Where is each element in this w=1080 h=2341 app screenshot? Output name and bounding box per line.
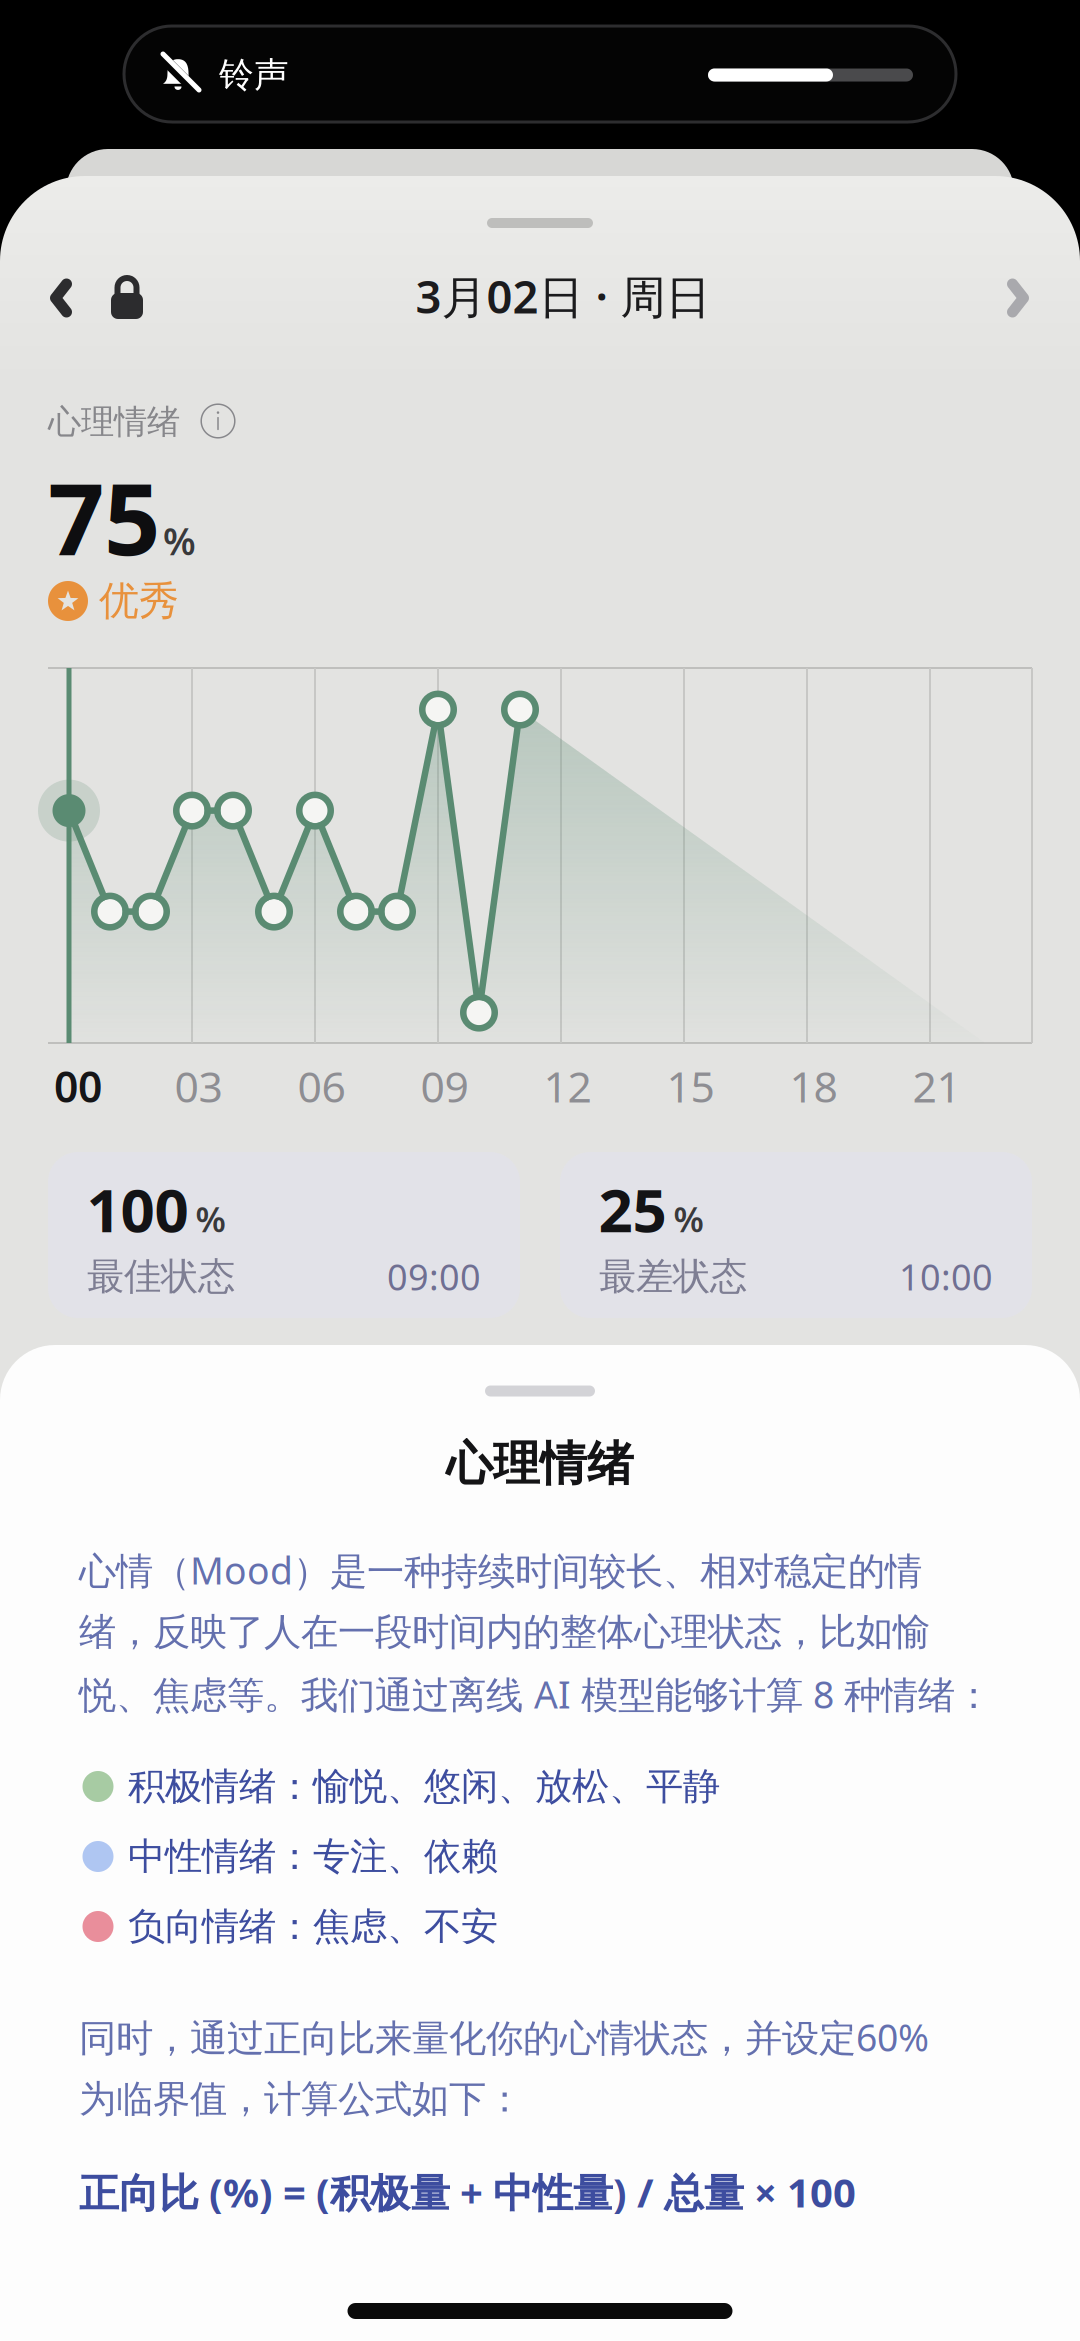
button[interactable]: 关于心理情绪 <box>197 400 239 442</box>
staticText: 最差状态 <box>599 1254 747 1299</box>
button[interactable]: 下一天 <box>995 264 1041 331</box>
staticText: 同时，通过正向比来量化你的心情状态，并设定60% <box>79 2012 929 2062</box>
staticText: 心理情绪 <box>48 401 180 442</box>
staticText: 绪，反映了人在一段时间内的整体心理状态，比如愉 <box>79 1609 930 1655</box>
staticText: 积极情绪：愉悦、悠闲、放松、平静 <box>128 1764 720 1809</box>
staticText: 心理情绪 <box>446 1435 634 1493</box>
staticText: 25 <box>598 1169 666 1249</box>
staticText: 12 <box>543 1058 591 1114</box>
staticText: 铃声 <box>219 54 289 96</box>
staticText: 心情（Mood）是一种持续时间较长、相对稳定的情 <box>79 1545 922 1595</box>
staticText: 优秀 <box>99 576 179 625</box>
staticText: 06 <box>297 1058 345 1114</box>
button[interactable]: 返回 <box>38 264 84 331</box>
button[interactable]: 铃声 静音 <box>124 26 956 122</box>
staticText: 3月02日 · 周日 <box>415 266 710 326</box>
staticText: 悦、焦虑等。我们通过离线 AI 模型能够计算 8 种情绪： <box>79 1669 992 1719</box>
staticText: 15 <box>666 1058 714 1114</box>
staticText: 75 <box>48 451 160 582</box>
staticText: % <box>163 516 196 566</box>
staticText: 03 <box>174 1058 222 1114</box>
staticText: 正向比 (%) = (积极量 + 中性量) / 总量 × 100 <box>79 2165 856 2218</box>
staticText: 00 <box>54 1058 102 1114</box>
staticText: 最佳状态 <box>87 1254 235 1299</box>
staticText: 100 <box>86 1169 188 1249</box>
staticText: 10:00 <box>899 1253 993 1300</box>
staticText: 负向情绪：焦虑、不安 <box>128 1904 498 1949</box>
staticText: 21 <box>912 1058 960 1114</box>
staticText: 18 <box>789 1058 837 1114</box>
staticText: 为临界值，计算公式如下： <box>79 2076 523 2122</box>
staticText: 09 <box>420 1058 468 1114</box>
staticText: 09:00 <box>387 1253 481 1300</box>
staticText: % <box>673 1196 703 1242</box>
staticText: % <box>195 1196 225 1242</box>
staticText: 中性情绪：专注、依赖 <box>128 1834 498 1879</box>
